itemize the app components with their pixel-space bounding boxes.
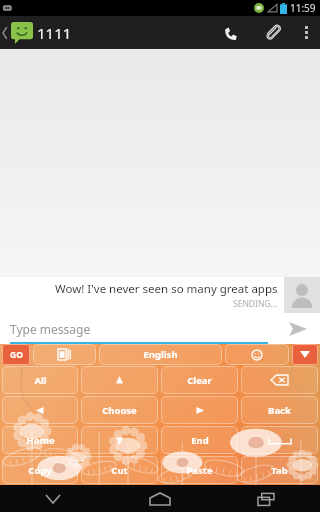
button[interactable]: Keyboard layout [33, 344, 96, 365]
staticText: English [143, 348, 178, 361]
button[interactable]: End [161, 426, 238, 454]
staticText: Clear [187, 374, 212, 387]
staticText: End [191, 434, 209, 447]
button[interactable]: Clear [161, 366, 238, 394]
button[interactable]: More options [292, 16, 320, 49]
button[interactable] [0, 22, 37, 44]
staticText: All [34, 374, 47, 387]
button[interactable]: Down [81, 426, 158, 454]
staticText: SENDING... [233, 298, 278, 310]
button[interactable]: Home [106, 485, 213, 512]
button[interactable]: Tab [241, 456, 318, 484]
button[interactable]: Left [2, 396, 78, 424]
button[interactable]: Back [241, 396, 318, 424]
button[interactable]: Right [161, 396, 238, 424]
button[interactable]: Type message [10, 313, 268, 344]
staticText: GO [10, 349, 23, 361]
staticText: 1111 [37, 23, 212, 43]
staticText: 11:59 [290, 1, 316, 15]
button[interactable]: Choose [81, 396, 158, 424]
button[interactable]: Home [2, 426, 78, 454]
button[interactable]: Attach [252, 16, 292, 49]
button[interactable]: Space [241, 426, 318, 454]
button[interactable]: Emoji [225, 344, 289, 365]
staticText: Copy [28, 464, 52, 477]
button[interactable]: English [99, 344, 222, 365]
button[interactable]: Copy [2, 456, 78, 484]
staticText: Wow! I've never seen so many great apps [55, 281, 278, 297]
button[interactable]: Call [212, 16, 252, 49]
button[interactable]: Up [81, 366, 158, 394]
button[interactable]: Recent apps [213, 485, 320, 512]
button[interactable]: Wow! I've never seen so many great apps [0, 277, 320, 313]
button[interactable]: Hide keyboard [292, 344, 318, 365]
button[interactable]: All [2, 366, 78, 394]
staticText: Tab [271, 464, 288, 477]
staticText: Paste [186, 464, 213, 477]
staticText: Choose [102, 404, 137, 417]
staticText: Home [26, 434, 55, 447]
staticText: Type message [10, 321, 91, 337]
button[interactable]: Hide keyboard [0, 485, 106, 512]
button[interactable]: GO [2, 344, 30, 365]
button[interactable]: Send [276, 313, 320, 344]
staticText: Back [268, 404, 291, 417]
button[interactable]: Paste [161, 456, 238, 484]
staticText: Cut [111, 464, 128, 477]
button[interactable]: Cut [81, 456, 158, 484]
button[interactable]: Backspace [241, 366, 318, 394]
